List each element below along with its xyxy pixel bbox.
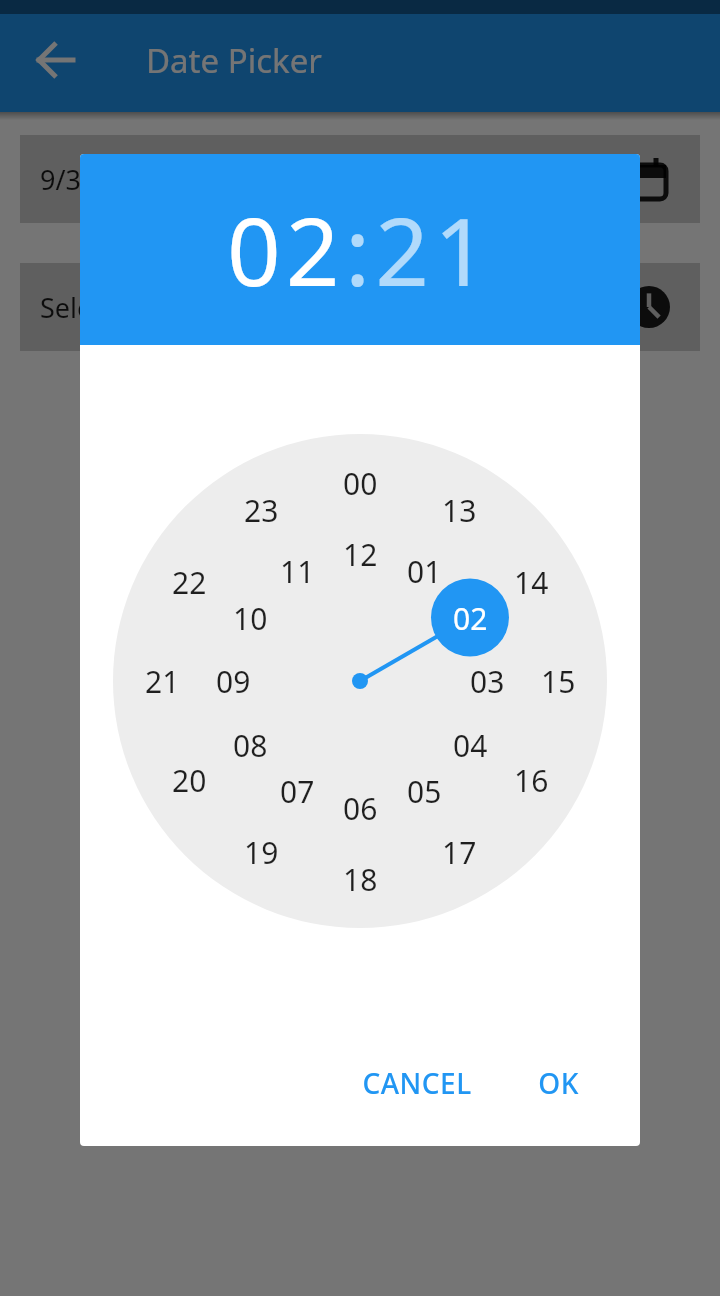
- staticText: 10: [233, 598, 268, 639]
- button[interactable]: [36, 40, 76, 80]
- staticText: 14: [514, 562, 549, 603]
- staticText: Date Picker: [146, 38, 322, 83]
- button[interactable]: OK: [518, 1049, 598, 1117]
- staticText: 19: [244, 832, 279, 873]
- staticText: 02: [227, 186, 345, 314]
- staticText: 06: [343, 788, 378, 829]
- staticText: 20: [172, 760, 207, 801]
- staticText: 03: [470, 661, 505, 702]
- staticText: OK: [538, 1064, 579, 1102]
- staticText: 9/30/2025: [40, 161, 169, 198]
- staticText: 07: [280, 771, 315, 812]
- staticText: 12: [343, 534, 378, 575]
- staticText: 22: [172, 562, 207, 603]
- staticText: 13: [442, 490, 477, 531]
- staticText: Select time: [40, 289, 180, 326]
- staticText: 01: [407, 551, 442, 592]
- staticText: 05: [407, 771, 442, 812]
- button[interactable]: Select time: [20, 263, 700, 351]
- staticText: 23: [244, 490, 279, 531]
- staticText: 02: [453, 598, 488, 639]
- staticText: :21: [345, 186, 493, 314]
- button[interactable]: CANCEL: [352, 1049, 482, 1117]
- staticText: 11: [280, 551, 315, 592]
- staticText: 21: [145, 661, 180, 702]
- staticText: 08: [233, 725, 268, 766]
- staticText: 17: [442, 832, 477, 873]
- staticText: 16: [514, 760, 549, 801]
- staticText: CANCEL: [362, 1064, 472, 1102]
- staticText: 18: [343, 859, 378, 900]
- staticText: 15: [541, 661, 576, 702]
- button[interactable]: 9/30/2025: [20, 135, 700, 223]
- staticText: 09: [216, 661, 251, 702]
- staticText: 00: [343, 463, 378, 504]
- staticText: 04: [453, 725, 488, 766]
